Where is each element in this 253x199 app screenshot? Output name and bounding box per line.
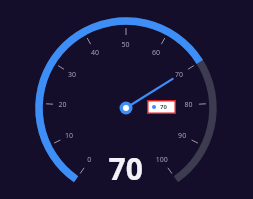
button[interactable]: Speedometer gauge showing 70 [0,0,253,199]
